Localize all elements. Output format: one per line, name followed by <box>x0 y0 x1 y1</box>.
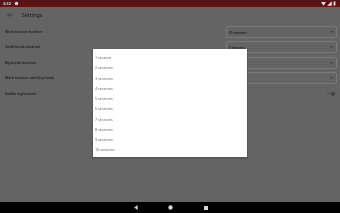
staticText: 9 sessions <box>95 137 113 142</box>
staticText: Small break duration <box>5 44 41 49</box>
button[interactable]: 10 sessions <box>93 144 247 154</box>
staticText: Settings <box>22 11 43 18</box>
button[interactable]: Back <box>3 8 16 21</box>
staticText: 5 minutes <box>229 45 245 49</box>
staticText: 3:32 <box>3 1 11 6</box>
button[interactable]: Recents <box>188 202 223 213</box>
staticText: 25 minutes <box>229 30 247 34</box>
staticText: Enable night mode <box>5 91 37 96</box>
button[interactable]: 5 sessions <box>93 93 247 103</box>
staticText: 6 sessions <box>95 106 113 111</box>
staticText: Work session duration <box>5 29 43 34</box>
button[interactable]: 1 session <box>93 52 247 62</box>
staticText: 5 sessions <box>95 96 113 101</box>
staticText: Work sessions until big break <box>5 75 55 80</box>
button[interactable]: 9 sessions <box>93 134 247 144</box>
button[interactable]: Enable night mode <box>0 86 340 101</box>
button[interactable]: Work session duration <box>0 24 340 39</box>
staticText: 2 sessions <box>95 65 113 70</box>
staticText: Big break duration <box>5 60 37 65</box>
button[interactable]: 8 sessions <box>93 124 247 134</box>
staticText: 3 sessions <box>95 76 113 81</box>
button[interactable]: 3 sessions <box>93 73 247 83</box>
staticText: 4 sessions <box>95 86 113 91</box>
button[interactable]: 1 session <box>93 49 247 157</box>
button[interactable]: Home <box>153 202 188 213</box>
button[interactable]: Work sessions until big break <box>0 70 340 85</box>
button[interactable]: Small break duration <box>0 39 340 54</box>
button[interactable]: Big break duration <box>0 55 340 70</box>
button[interactable]: Back <box>118 202 153 213</box>
button[interactable]: 7 sessions <box>93 114 247 124</box>
button[interactable]: 4 sessions <box>93 83 247 93</box>
staticText: 7 sessions <box>95 117 113 122</box>
staticText: 10 sessions <box>95 147 115 152</box>
button[interactable]: 6 sessions <box>93 103 247 113</box>
button[interactable]: 2 sessions <box>93 62 247 72</box>
staticText: 1 session <box>95 55 111 60</box>
staticText: 8 sessions <box>95 127 113 132</box>
